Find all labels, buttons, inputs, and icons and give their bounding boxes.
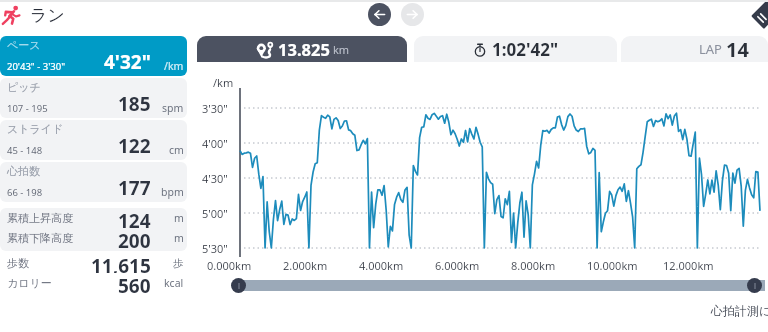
staticText: 13.825 [278, 38, 330, 60]
staticText: 歩 [173, 257, 184, 270]
staticText: ペース [7, 38, 41, 52]
staticText: 8.000km [511, 258, 556, 273]
staticText: ストライド [7, 122, 64, 136]
button[interactable]: 歩数 [0, 253, 187, 293]
staticText: cm [169, 143, 184, 157]
staticText: 10.000km [587, 258, 638, 273]
staticText: ピッチ [7, 80, 41, 94]
staticText: 1:02'42" [492, 38, 559, 61]
button[interactable]: 心拍数 [0, 162, 187, 202]
button[interactable]: Range start [231, 278, 246, 293]
button[interactable]: ピッチ [0, 78, 187, 118]
button[interactable]: Range end [747, 278, 762, 293]
staticText: 累積上昇高度 [7, 211, 73, 225]
staticText: /km [213, 75, 234, 90]
button[interactable]: Previous activity [368, 3, 391, 26]
staticText: 12.000km [663, 258, 714, 273]
staticText: 4'32" [104, 49, 151, 75]
staticText: 0.000km [207, 258, 252, 273]
staticText: m [174, 211, 184, 225]
staticText: LAP [699, 40, 722, 58]
staticText: 5'00" [202, 206, 228, 221]
staticText: カロリー [7, 276, 52, 290]
staticText: 122 [118, 133, 151, 159]
staticText: 心拍計測に [711, 303, 768, 318]
staticText: 11,615 [91, 253, 151, 273]
staticText: 107 - 195 [7, 102, 48, 115]
staticText: 4.000km [359, 258, 404, 273]
staticText: 177 [118, 175, 151, 201]
button[interactable]: ペース [0, 36, 187, 76]
staticText: 3'30" [202, 101, 228, 116]
staticText: spm [162, 101, 184, 115]
staticText: m [174, 231, 184, 245]
button[interactable]: LAP [621, 36, 768, 62]
staticText: 4'30" [202, 171, 228, 186]
staticText: bpm [161, 185, 184, 199]
staticText: 185 [118, 91, 151, 117]
staticText: /km [164, 59, 184, 73]
staticText: 14 [726, 36, 749, 62]
staticText: ラン [30, 5, 65, 26]
staticText: 4'00" [202, 136, 228, 151]
button[interactable]: 累積上昇高度 [0, 208, 187, 251]
staticText: 累積下降高度 [7, 231, 73, 245]
staticText: 5'30" [202, 241, 228, 256]
staticText: kcal [164, 276, 184, 290]
staticText: 6.000km [435, 258, 480, 273]
staticText: 124 [118, 208, 151, 228]
staticText: 20'43" - 3'30" [7, 60, 66, 73]
staticText: 200 [118, 228, 151, 248]
button[interactable]: ストライド [0, 120, 187, 160]
staticText: km [333, 42, 350, 57]
staticText: 歩数 [7, 256, 29, 270]
staticText: 2.000km [283, 258, 328, 273]
button[interactable]: 1:02'42" [414, 36, 617, 62]
staticText: 心拍数 [7, 164, 40, 178]
staticText: 560 [118, 273, 151, 293]
button[interactable]: 13.825 [197, 36, 407, 62]
button[interactable]: Next activity [401, 3, 424, 26]
staticText: 45 - 148 [7, 144, 43, 157]
staticText: 66 - 198 [7, 186, 43, 199]
button[interactable]: Tags [748, 0, 768, 30]
